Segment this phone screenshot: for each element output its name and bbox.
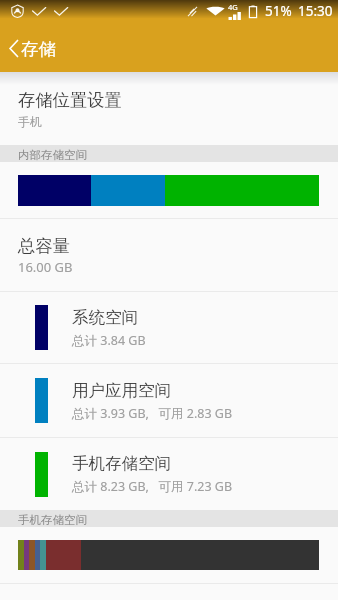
staticText: 手机存储空间: [18, 513, 87, 527]
button[interactable]: 存储位置设置: [0, 72, 338, 145]
staticText: 存储位置设置: [18, 89, 122, 111]
staticText: 4G: [228, 2, 238, 12]
button[interactable]: 用户应用空间: [0, 364, 338, 437]
button[interactable]: 手机存储空间: [0, 438, 338, 510]
staticText: 15:30: [298, 2, 333, 20]
button[interactable]: Back: [0, 22, 21, 72]
staticText: 总计 8.23 GB, 可用 7.23 GB: [72, 478, 233, 495]
staticText: 系统空间: [72, 307, 138, 328]
button[interactable]: 系统空间: [0, 292, 338, 363]
staticText: 51%: [265, 2, 292, 20]
staticText: 总计 3.84 GB: [72, 332, 146, 349]
staticText: 内部存储空间: [18, 148, 87, 162]
staticText: 16.00 GB: [18, 258, 73, 276]
staticText: 总计 3.93 GB, 可用 2.83 GB: [72, 405, 233, 422]
staticText: 手机存储空间: [72, 453, 171, 474]
button[interactable]: 总容量: [0, 219, 338, 291]
staticText: 用户应用空间: [72, 380, 171, 401]
staticText: 存储: [21, 38, 56, 60]
staticText: 总容量: [18, 235, 70, 257]
staticText: 手机: [18, 114, 42, 129]
